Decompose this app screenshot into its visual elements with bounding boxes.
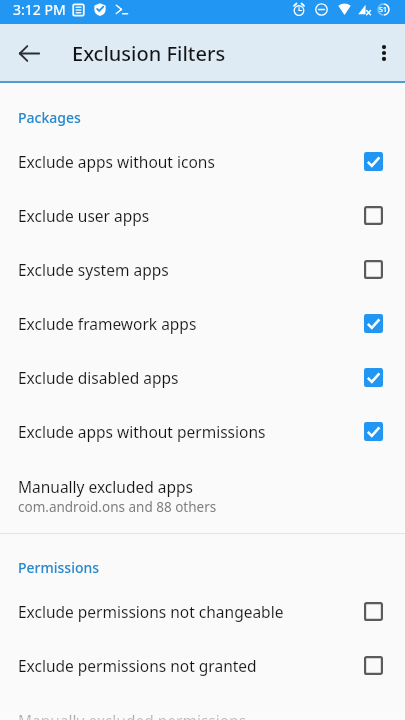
button[interactable]: Packages <box>0 100 405 134</box>
button[interactable]: Exclude apps without permissions <box>0 404 405 458</box>
button[interactable]: Exclude permissions not granted <box>0 638 405 692</box>
button[interactable]: Manually excluded apps <box>0 458 405 533</box>
staticText: Exclusion Filters <box>72 40 226 67</box>
staticText: Exclude permissions not changeable <box>18 601 364 622</box>
staticText: Packages <box>18 108 81 127</box>
staticText: Exclude user apps <box>18 205 364 226</box>
staticText: Permissions <box>18 558 100 577</box>
staticText: Exclude apps without icons <box>18 151 364 172</box>
staticText: Exclude disabled apps <box>18 367 364 388</box>
staticText: Manually excluded apps <box>18 476 193 497</box>
button[interactable]: Exclude framework apps <box>0 296 405 350</box>
staticText: 3:12 PM <box>13 0 66 19</box>
button[interactable]: Exclude system apps <box>0 242 405 296</box>
button[interactable]: Exclude user apps <box>0 188 405 242</box>
button[interactable]: Permissions <box>0 550 405 584</box>
button[interactable]: Exclude permissions not changeable <box>0 584 405 638</box>
staticText: Manually excluded permissions <box>18 710 247 720</box>
staticText: Exclude apps without permissions <box>18 421 364 442</box>
staticText: Exclude permissions not granted <box>18 655 364 676</box>
button[interactable]: Exclude apps without icons <box>0 134 405 188</box>
button[interactable]: Manually excluded permissions <box>0 692 405 720</box>
staticText: Exclude framework apps <box>18 313 364 334</box>
staticText: 51 <box>379 5 388 15</box>
button[interactable]: Exclude disabled apps <box>0 350 405 404</box>
button[interactable]: More options <box>360 31 404 75</box>
button[interactable]: Navigate up <box>7 31 51 75</box>
staticText: Exclude system apps <box>18 259 364 280</box>
staticText: com.android.ons and 88 others <box>18 498 217 516</box>
